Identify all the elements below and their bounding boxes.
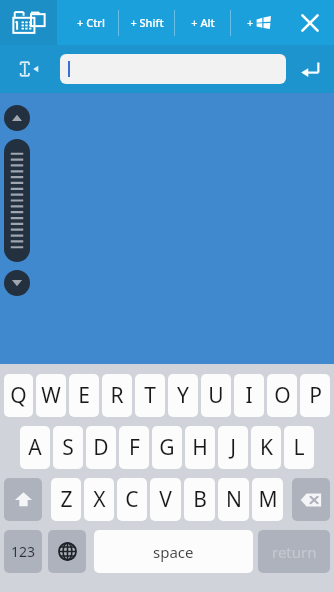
staticText: I — [245, 381, 253, 410]
staticText: X — [93, 485, 106, 514]
button[interactable]: N — [218, 478, 249, 521]
button[interactable]: W — [36, 374, 66, 417]
button[interactable]: S — [53, 426, 83, 469]
staticText: L — [293, 433, 305, 462]
button[interactable]: V — [150, 478, 181, 521]
staticText: space — [153, 542, 194, 562]
staticText: J — [230, 433, 236, 462]
button[interactable]: 123 — [4, 530, 42, 573]
staticText: 123 — [11, 542, 36, 561]
button[interactable]: + Shift — [119, 0, 174, 45]
button[interactable]: Q — [4, 374, 33, 417]
button[interactable]: B — [184, 478, 215, 521]
staticText: H — [192, 433, 208, 462]
button[interactable]: X — [84, 478, 114, 521]
staticText: Y — [177, 381, 189, 410]
staticText: C — [125, 485, 139, 514]
button[interactable]: K — [251, 426, 281, 469]
staticText: + — [247, 15, 254, 30]
staticText: T — [144, 381, 156, 410]
button[interactable]: space — [94, 530, 253, 573]
staticText: B — [193, 485, 207, 514]
button[interactable]: P — [300, 374, 330, 417]
staticText: G — [159, 433, 175, 462]
button[interactable]: T — [135, 374, 165, 417]
staticText: V — [159, 485, 172, 514]
staticText: W — [41, 381, 61, 410]
staticText: P — [309, 381, 322, 410]
button[interactable]: Shift — [4, 478, 42, 521]
staticText: D — [93, 433, 109, 462]
button[interactable]: H — [185, 426, 215, 469]
staticText: Q — [10, 381, 27, 410]
button[interactable]: Y — [168, 374, 198, 417]
staticText: O — [274, 381, 291, 410]
button[interactable]: C — [117, 478, 147, 521]
button[interactable]: Backspace — [292, 478, 330, 521]
button[interactable]: U — [201, 374, 231, 417]
staticText: U — [208, 381, 224, 410]
button[interactable]: J — [218, 426, 248, 469]
button[interactable]: F — [119, 426, 149, 469]
button[interactable]: Scroll down — [4, 270, 30, 296]
button[interactable]: L — [284, 426, 314, 469]
staticText: F — [129, 433, 140, 462]
button[interactable]: Text input mode — [0, 45, 60, 93]
button[interactable]: Windows key — [231, 0, 286, 45]
button[interactable]: O — [267, 374, 297, 417]
button[interactable]: + Ctrl — [63, 0, 118, 45]
staticText: R — [110, 381, 124, 410]
button[interactable]: Enter — [286, 45, 334, 93]
staticText: + Ctrl — [77, 15, 105, 30]
button[interactable]: I — [234, 374, 264, 417]
button[interactable]: E — [69, 374, 99, 417]
staticText: N — [226, 485, 242, 514]
button[interactable]: Scroll up — [4, 105, 30, 131]
staticText: + Alt — [191, 15, 215, 30]
button[interactable]: Close — [286, 0, 334, 45]
button[interactable]: Change language — [48, 530, 86, 573]
button[interactable]: Keyboard layout — [0, 0, 57, 45]
staticText: M — [258, 485, 278, 514]
staticText: E — [78, 381, 90, 410]
staticText: K — [260, 433, 273, 462]
button[interactable]: D — [86, 426, 116, 469]
button[interactable]: G — [152, 426, 182, 469]
staticText: S — [62, 433, 74, 462]
button[interactable]: Scroll thumb — [4, 139, 30, 262]
button[interactable]: return — [258, 530, 330, 573]
staticText: A — [28, 433, 42, 462]
staticText: + Shift — [130, 15, 164, 30]
button[interactable]: R — [102, 374, 132, 417]
staticText: return — [272, 542, 317, 562]
button[interactable]: A — [20, 426, 50, 469]
button[interactable]: M — [252, 478, 283, 521]
button[interactable]: Z — [51, 478, 81, 521]
staticText: Z — [60, 485, 73, 514]
button[interactable] — [60, 54, 286, 84]
button[interactable]: + Alt — [175, 0, 230, 45]
